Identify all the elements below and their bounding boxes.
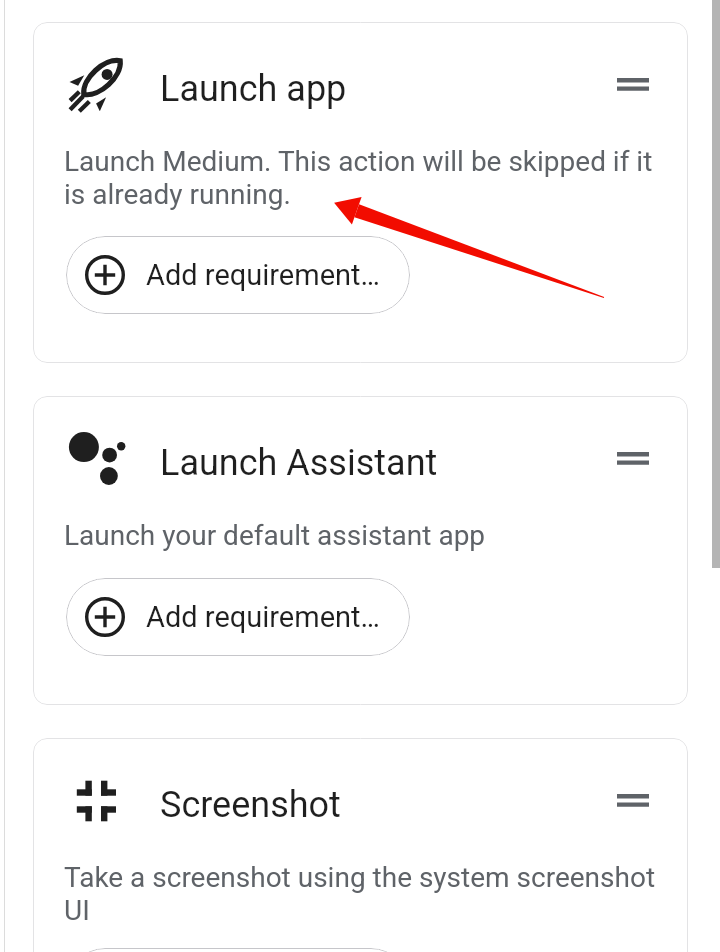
- button[interactable]: Reorder: [604, 55, 662, 113]
- button[interactable]: Reorder: [604, 771, 662, 829]
- button[interactable]: Add requirement…: [66, 578, 410, 656]
- button[interactable]: Reorder: [604, 429, 662, 487]
- staticText: Launch Assistant: [160, 442, 438, 484]
- staticText: Launch Medium. This action will be skipp…: [64, 145, 656, 211]
- button[interactable]: Add requirement…: [66, 948, 410, 952]
- staticText: Launch your default assistant app: [64, 519, 656, 552]
- button[interactable]: Add requirement…: [66, 236, 410, 314]
- button[interactable]: Launch app: [33, 22, 688, 363]
- staticText: Add requirement…: [146, 600, 380, 634]
- button[interactable]: Screenshot: [33, 738, 688, 952]
- staticText: Launch app: [160, 68, 347, 110]
- staticText: Add requirement…: [146, 258, 380, 292]
- button[interactable]: Launch Assistant: [33, 396, 688, 705]
- staticText: Take a screenshot using the system scree…: [64, 861, 656, 927]
- staticText: Screenshot: [160, 784, 341, 826]
